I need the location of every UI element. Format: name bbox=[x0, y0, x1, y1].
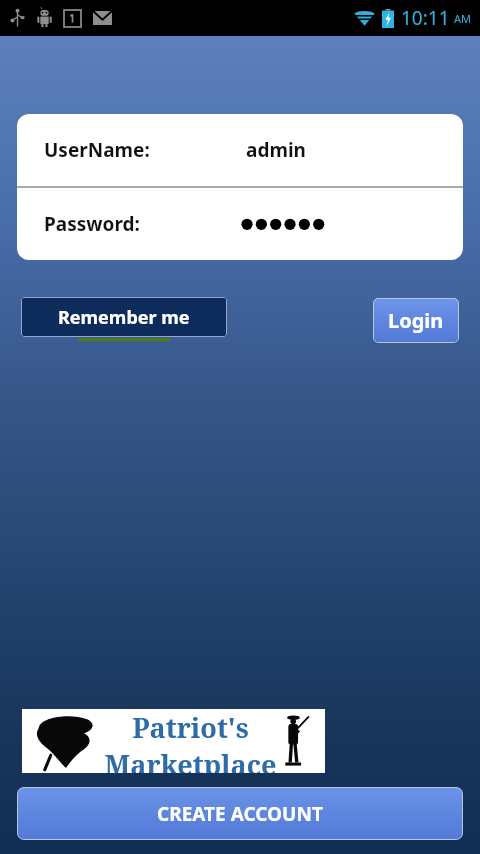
button[interactable]: UserName: bbox=[17, 114, 463, 186]
button[interactable]: Password: bbox=[17, 188, 463, 260]
button[interactable]: Patriot's Marketplace bbox=[22, 709, 325, 773]
button[interactable]: Remember me bbox=[21, 297, 227, 337]
staticText: UserName: bbox=[44, 137, 150, 163]
staticText: Login bbox=[388, 307, 444, 334]
staticText: 10:11 bbox=[401, 5, 450, 31]
button[interactable]: CREATE ACCOUNT bbox=[17, 787, 463, 840]
staticText: CREATE ACCOUNT bbox=[157, 801, 323, 827]
staticText: Password: bbox=[44, 211, 140, 237]
staticText: Remember me bbox=[58, 305, 190, 330]
staticText: Patriot's Marketplace bbox=[56, 709, 325, 773]
staticText: admin bbox=[246, 137, 306, 163]
staticText: AM bbox=[454, 11, 472, 26]
button[interactable]: Login bbox=[373, 298, 459, 343]
